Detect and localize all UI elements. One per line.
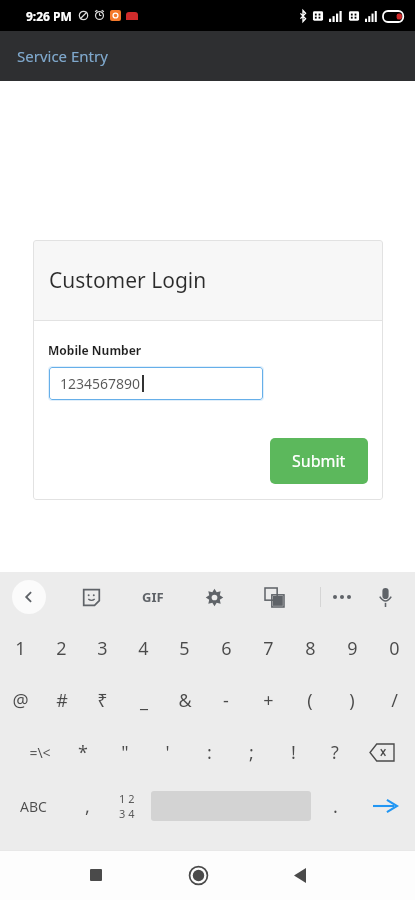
button[interactable]: #: [41, 674, 82, 726]
button[interactable]: 8: [289, 622, 331, 674]
button[interactable]: Close toolbar: [12, 580, 46, 614]
button[interactable]: Translate: [255, 578, 293, 616]
staticText: 5: [179, 636, 190, 661]
button[interactable]: Numbers: [107, 778, 147, 834]
button[interactable]: Settings: [195, 578, 233, 616]
button[interactable]: :: [188, 726, 230, 778]
staticText: =\<: [29, 743, 51, 762]
staticText: +: [263, 688, 274, 713]
staticText: @: [12, 688, 29, 713]
staticText: ;: [249, 740, 254, 765]
staticText: 3: [97, 636, 108, 661]
button[interactable]: Submit: [270, 438, 368, 484]
button[interactable]: ): [331, 674, 373, 726]
staticText: ₹: [97, 688, 108, 713]
staticText: 3 4: [119, 806, 135, 821]
staticText: Mobile Number: [48, 342, 142, 358]
button[interactable]: ₹: [82, 674, 123, 726]
staticText: 1234567890: [60, 374, 141, 393]
button[interactable]: ,: [67, 778, 107, 834]
staticText: ): [349, 688, 355, 713]
staticText: ?: [331, 740, 339, 765]
staticText: :: [207, 740, 212, 765]
button[interactable]: 2: [41, 622, 82, 674]
staticText: #: [56, 688, 68, 713]
button[interactable]: 0: [373, 622, 415, 674]
button[interactable]: 7: [247, 622, 289, 674]
staticText: 1 2: [119, 791, 135, 806]
button[interactable]: 1234567890: [49, 367, 263, 400]
staticText: 8: [305, 636, 316, 661]
staticText: *: [78, 740, 88, 765]
button[interactable]: GIF: [133, 577, 173, 617]
button[interactable]: ;: [230, 726, 272, 778]
staticText: ,: [85, 794, 90, 819]
button[interactable]: Back: [276, 851, 324, 899]
button[interactable]: 9: [331, 622, 373, 674]
button[interactable]: Recents: [72, 851, 120, 899]
button[interactable]: +: [247, 674, 289, 726]
button[interactable]: &: [164, 674, 205, 726]
button[interactable]: ': [146, 726, 188, 778]
staticText: .: [333, 794, 338, 819]
staticText: 9:26 PM: [26, 8, 72, 24]
staticText: !: [291, 740, 296, 765]
staticText: _: [140, 688, 148, 713]
staticText: 0: [389, 636, 400, 661]
staticText: 2: [56, 636, 67, 661]
staticText: ABC: [20, 797, 47, 816]
button[interactable]: 4: [123, 622, 164, 674]
button[interactable]: _: [123, 674, 164, 726]
staticText: Service Entry: [17, 46, 108, 66]
staticText: ': [165, 740, 170, 765]
button[interactable]: 5: [164, 622, 205, 674]
staticText: ": [121, 740, 129, 765]
button[interactable]: *: [61, 726, 104, 778]
staticText: -: [223, 688, 229, 713]
button[interactable]: Backspace: [356, 726, 407, 778]
staticText: 1: [15, 636, 26, 661]
staticText: Submit: [292, 450, 346, 472]
button[interactable]: Home: [174, 851, 222, 899]
button[interactable]: ?: [314, 726, 356, 778]
button[interactable]: @: [0, 674, 41, 726]
staticText: &: [178, 688, 192, 713]
staticText: 9: [347, 636, 358, 661]
button[interactable]: Stickers: [73, 579, 109, 615]
button[interactable]: 6: [205, 622, 247, 674]
staticText: Customer Login: [49, 266, 207, 295]
staticText: (: [307, 688, 313, 713]
button[interactable]: 3: [82, 622, 123, 674]
staticText: 6: [221, 636, 232, 661]
button[interactable]: Voice input: [363, 575, 407, 619]
staticText: /: [391, 688, 398, 713]
staticText: 4: [138, 636, 149, 661]
button[interactable]: More options: [321, 576, 363, 618]
button[interactable]: 1: [0, 622, 41, 674]
button[interactable]: ": [104, 726, 146, 778]
button[interactable]: (: [289, 674, 331, 726]
staticText: GIF: [142, 588, 164, 606]
button[interactable]: =\<: [18, 726, 61, 778]
button[interactable]: .: [315, 778, 355, 834]
button[interactable]: !: [272, 726, 314, 778]
staticText: 7: [263, 636, 274, 661]
button[interactable]: /: [373, 674, 415, 726]
button[interactable]: ABC: [0, 778, 67, 834]
button[interactable]: -: [205, 674, 247, 726]
button[interactable]: Next: [355, 778, 415, 834]
